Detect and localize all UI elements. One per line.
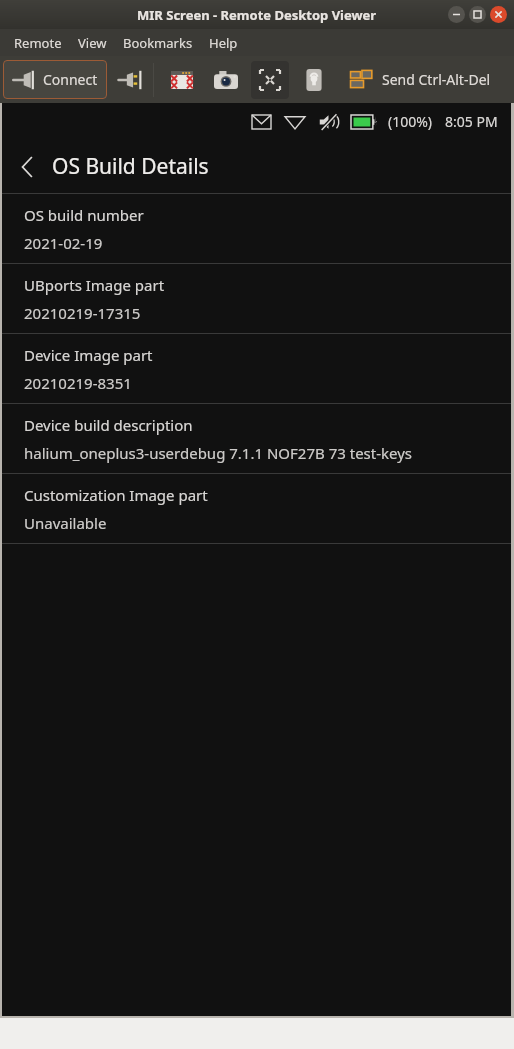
staticText: 2021-02-19	[24, 233, 103, 253]
staticText: Unavailable	[24, 513, 107, 533]
staticText: 8:05 PM	[445, 112, 498, 131]
button[interactable]: Send Ctrl-Alt-Del	[346, 56, 495, 103]
staticText: Help	[209, 34, 238, 52]
staticText: Device build description	[24, 415, 193, 435]
staticText: Connect	[43, 70, 98, 89]
staticText: 20210219-8351	[24, 373, 132, 393]
button[interactable]: Bookmarks	[115, 29, 201, 56]
staticText: UBports Image part	[24, 275, 165, 295]
button[interactable]: Help	[201, 29, 246, 56]
staticText: (100%)	[388, 112, 433, 131]
button[interactable]: Close	[490, 6, 507, 23]
button[interactable]: Fullscreen	[163, 61, 201, 99]
button[interactable]: Disconnect	[115, 64, 147, 96]
button[interactable]: Minimize	[448, 6, 465, 23]
button[interactable]: Screenshot	[207, 61, 245, 99]
staticText: View	[78, 34, 107, 52]
staticText: OS build number	[24, 205, 144, 225]
staticText: 20210219-17315	[24, 303, 141, 323]
button[interactable]: Device build description	[2, 404, 511, 473]
button[interactable]: Maximize	[469, 6, 486, 23]
staticText: halium_oneplus3-userdebug 7.1.1 NOF27B 7…	[24, 443, 413, 463]
staticText: Customization Image part	[24, 485, 208, 505]
staticText: MIR Screen - Remote Desktop Viewer	[137, 6, 377, 24]
button[interactable]: Remote	[6, 29, 70, 56]
button[interactable]: UBports Image part	[2, 264, 511, 333]
staticText: Remote	[14, 34, 62, 52]
button[interactable]: View only	[295, 61, 333, 99]
button[interactable]: Device Image part	[2, 334, 511, 403]
button[interactable]: OS build number	[2, 194, 511, 263]
staticText: Device Image part	[24, 345, 153, 365]
staticText: Bookmarks	[123, 34, 193, 52]
staticText: Send Ctrl-Alt-Del	[382, 70, 491, 89]
button[interactable]: Customization Image part	[2, 474, 511, 543]
button[interactable]: Scaling	[251, 61, 289, 99]
button[interactable]: View	[70, 29, 115, 56]
button[interactable]: Back	[2, 140, 52, 193]
button[interactable]: Connect	[3, 60, 107, 99]
staticText: OS Build Details	[52, 152, 209, 181]
